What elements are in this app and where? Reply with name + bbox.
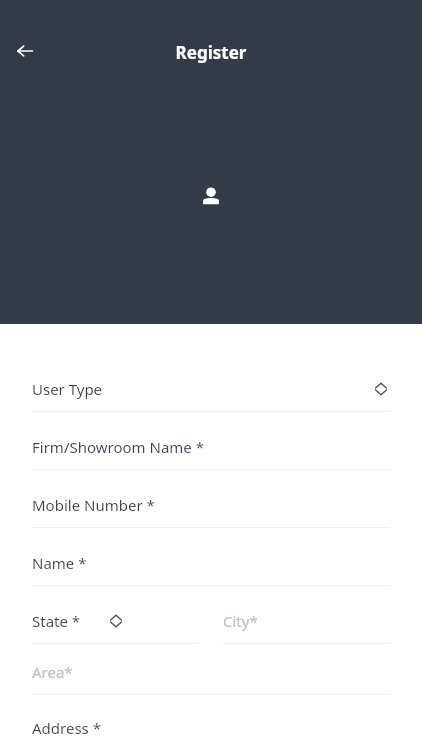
other: Open State dropdown: [107, 612, 125, 630]
button[interactable]: Add profile photo: [185, 171, 237, 223]
staticText: City*: [223, 611, 258, 631]
staticText: Address *: [32, 718, 101, 738]
other: Open User Type dropdown: [372, 380, 390, 398]
staticText: Mobile Number *: [32, 495, 155, 515]
button[interactable]: Area*: [32, 650, 390, 695]
button[interactable]: User Type: [32, 367, 390, 412]
staticText: Name *: [32, 553, 87, 573]
button[interactable]: Name *: [32, 541, 390, 586]
button[interactable]: Back: [8, 34, 42, 68]
button[interactable]: Address *: [32, 708, 390, 748]
staticText: User Type: [32, 379, 103, 399]
button[interactable]: State *: [32, 599, 199, 644]
staticText: State *: [32, 611, 81, 631]
button[interactable]: City*: [223, 599, 390, 644]
staticText: Firm/Showroom Name *: [32, 437, 204, 457]
staticText: Register: [0, 41, 422, 64]
button[interactable]: Mobile Number *: [32, 483, 390, 528]
button[interactable]: Firm/Showroom Name *: [32, 425, 390, 470]
staticText: Area*: [32, 662, 73, 682]
